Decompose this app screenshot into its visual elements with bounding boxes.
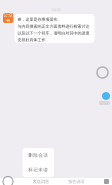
staticText: 睿，这里是你事项落实 xyxy=(17,17,57,22)
staticText: 发送消息 xyxy=(33,179,49,184)
staticText: 标记未读 xyxy=(28,167,48,173)
staticText: 与内容搜索的正文方面资料进行检索讨论 xyxy=(17,24,89,29)
staticText: 删除会话 xyxy=(28,152,48,158)
staticText: 以及以下一个轻车，请明白对其中的进度 xyxy=(17,31,89,36)
button[interactable]: 标记未读 xyxy=(22,162,54,177)
staticText: 号 xyxy=(6,18,11,24)
button[interactable]: 发送消息 xyxy=(33,179,49,184)
button[interactable]: Voice input xyxy=(3,176,13,185)
button[interactable]: 按住说话 xyxy=(68,179,84,184)
staticText: 14:06 xyxy=(51,7,60,12)
staticText: 按住说话 xyxy=(68,179,84,184)
staticText: 安排好具体工作 xyxy=(17,37,45,42)
button[interactable]: More xyxy=(104,179,109,184)
staticText: 公众 xyxy=(3,12,13,18)
button[interactable]: 删除会话 xyxy=(22,148,54,162)
